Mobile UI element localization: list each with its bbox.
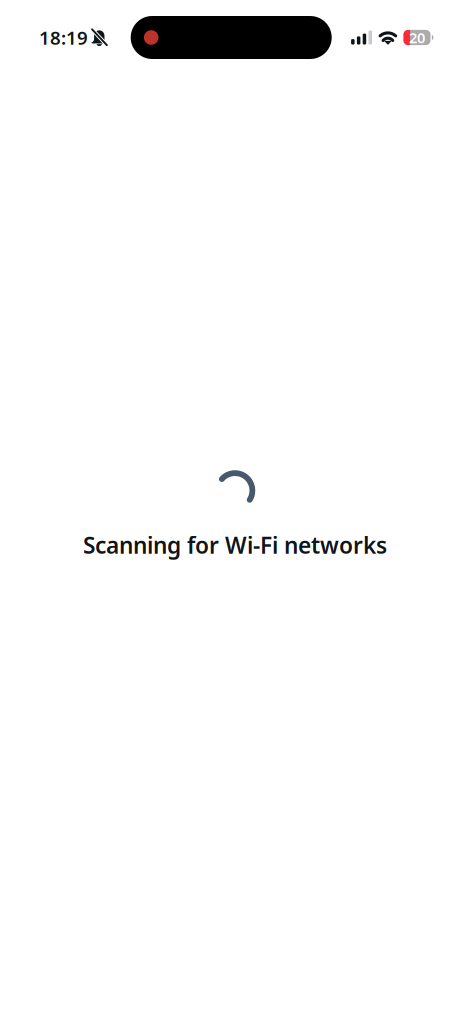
staticText: 18:19 bbox=[39, 25, 88, 50]
staticText: Scanning for Wi-Fi networks bbox=[83, 530, 387, 560]
staticText: 20 bbox=[409, 28, 425, 47]
